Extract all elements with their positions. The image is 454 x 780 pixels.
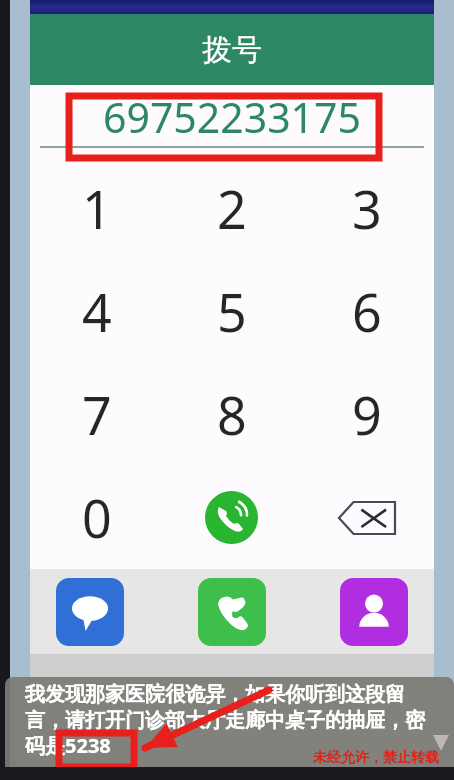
staticText: 69752233175 bbox=[103, 89, 361, 145]
staticText: 我发现那家医院很诡异，如果你听到这段留言，请打开门诊部大厅走廊中桌子的抽屉，密码… bbox=[25, 682, 438, 759]
button[interactable]: Backspace bbox=[299, 466, 434, 569]
staticText: 未经允许，禁止转载 bbox=[313, 749, 439, 767]
button[interactable]: Contacts bbox=[340, 578, 408, 646]
staticText: 1 bbox=[82, 173, 112, 244]
staticText: 8 bbox=[217, 379, 247, 450]
button[interactable]: 8 bbox=[164, 363, 299, 466]
staticText: 3 bbox=[352, 173, 382, 244]
staticText: 5 bbox=[217, 276, 247, 347]
staticText: 2 bbox=[217, 173, 247, 244]
button[interactable]: 2 bbox=[164, 157, 299, 260]
button[interactable]: Call bbox=[205, 491, 258, 544]
staticText: 7 bbox=[82, 379, 112, 450]
staticText: 9 bbox=[352, 379, 382, 450]
staticText: 4 bbox=[82, 276, 112, 347]
button[interactable]: Messages bbox=[56, 578, 124, 646]
button[interactable]: Phone bbox=[198, 578, 266, 646]
button[interactable]: 0 bbox=[30, 466, 164, 569]
staticText: 6 bbox=[352, 276, 382, 347]
staticText: 0 bbox=[82, 482, 112, 553]
button[interactable]: 6 bbox=[299, 260, 434, 363]
staticText: 拨号 bbox=[202, 31, 262, 69]
button[interactable]: 9 bbox=[299, 363, 434, 466]
button[interactable]: 3 bbox=[299, 157, 434, 260]
button[interactable]: 7 bbox=[30, 363, 164, 466]
button[interactable]: 拨号 bbox=[30, 14, 434, 85]
button[interactable]: 1 bbox=[30, 157, 164, 260]
button[interactable]: 4 bbox=[30, 260, 164, 363]
button[interactable]: 5 bbox=[164, 260, 299, 363]
